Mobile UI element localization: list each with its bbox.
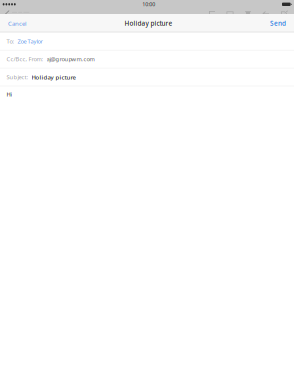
staticText: Holiday picture — [31, 73, 75, 81]
staticText: Hi — [6, 90, 11, 98]
staticText: Holiday picture — [124, 19, 172, 28]
button[interactable]: Cancel — [0, 14, 35, 32]
staticText: Subject: — [6, 73, 28, 81]
staticText: Zoe Taylor — [17, 37, 42, 45]
staticText: Cc/Bcc, From: — [6, 55, 43, 63]
staticText: aj@groupwm.com — [46, 55, 94, 63]
staticText: To: — [6, 37, 14, 45]
staticText: Cancel — [8, 19, 27, 27]
staticText: 10:00 — [142, 1, 155, 8]
button[interactable]: Send — [262, 14, 294, 32]
staticText: Send — [270, 19, 286, 28]
